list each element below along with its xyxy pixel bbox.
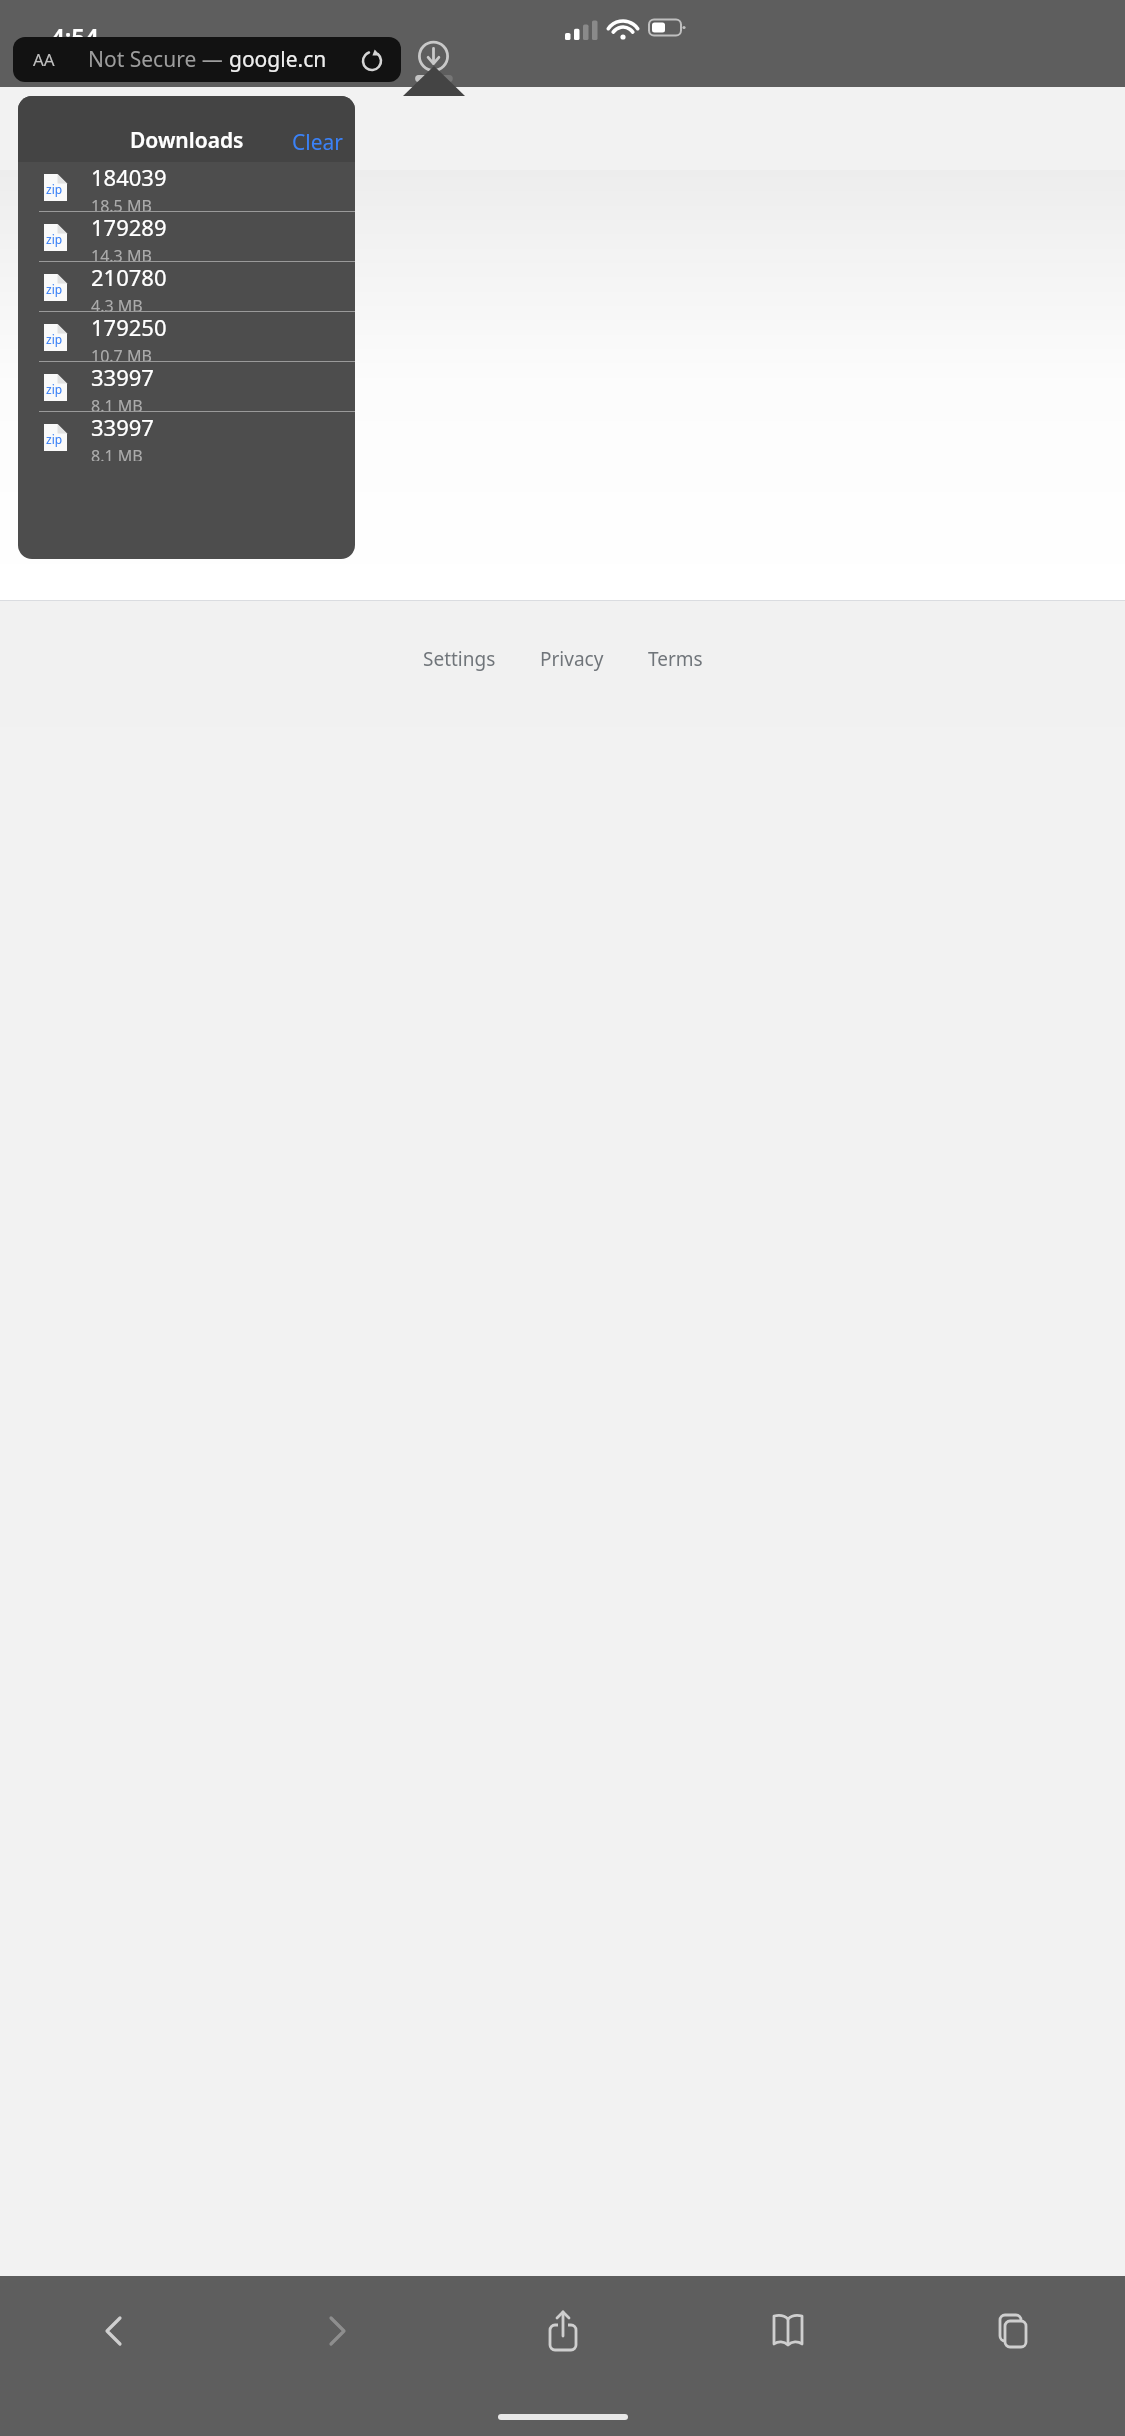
staticText: 210780 (91, 262, 167, 292)
button[interactable]: AA (13, 37, 401, 82)
staticText: 179250 (91, 312, 167, 342)
button[interactable]: zip (18, 412, 355, 461)
staticText: 14.3 MB (91, 245, 152, 261)
staticText: zip (46, 181, 63, 197)
staticText: Terms (648, 646, 703, 672)
staticText: zip (46, 331, 63, 347)
button[interactable]: Privacy (534, 640, 610, 678)
staticText: 8.1 MB (91, 445, 143, 461)
staticText: AA (33, 48, 55, 71)
staticText: Clear (292, 128, 343, 151)
staticText: 4.3 MB (91, 295, 143, 311)
button[interactable]: zip (18, 262, 355, 311)
staticText: 33997 (91, 362, 154, 392)
button[interactable]: Clear (280, 126, 355, 153)
button[interactable]: Forward (225, 2276, 450, 2386)
staticText: Downloads (130, 126, 244, 153)
staticText: zip (46, 281, 63, 297)
button[interactable]: Settings (417, 640, 502, 678)
staticText: Settings (423, 646, 496, 672)
button[interactable]: zip (18, 162, 355, 211)
staticText: zip (46, 381, 63, 397)
button[interactable]: zip (18, 312, 355, 361)
staticText: Privacy (540, 646, 604, 672)
staticText: 33997 (91, 412, 154, 442)
button[interactable]: Share (450, 2276, 675, 2386)
other: Reload (360, 48, 384, 72)
staticText: google.cn (229, 45, 327, 74)
staticText: 18.5 MB (91, 195, 152, 211)
staticText: 8.1 MB (91, 395, 143, 411)
staticText: zip (46, 431, 63, 447)
button[interactable]: Tabs (900, 2276, 1125, 2386)
button[interactable]: Back (0, 2276, 225, 2386)
staticText: 184039 (91, 162, 167, 192)
button[interactable]: Downloads (410, 36, 457, 83)
staticText: zip (46, 231, 63, 247)
staticText: 10.7 MB (91, 345, 152, 361)
staticText: 179289 (91, 212, 167, 242)
button[interactable]: Bookmarks (675, 2276, 900, 2386)
button[interactable]: zip (18, 362, 355, 411)
button[interactable]: zip (18, 212, 355, 261)
staticText: 4:54 (51, 20, 99, 53)
staticText: Not Secure — (88, 45, 229, 74)
button[interactable]: Terms (642, 640, 709, 678)
